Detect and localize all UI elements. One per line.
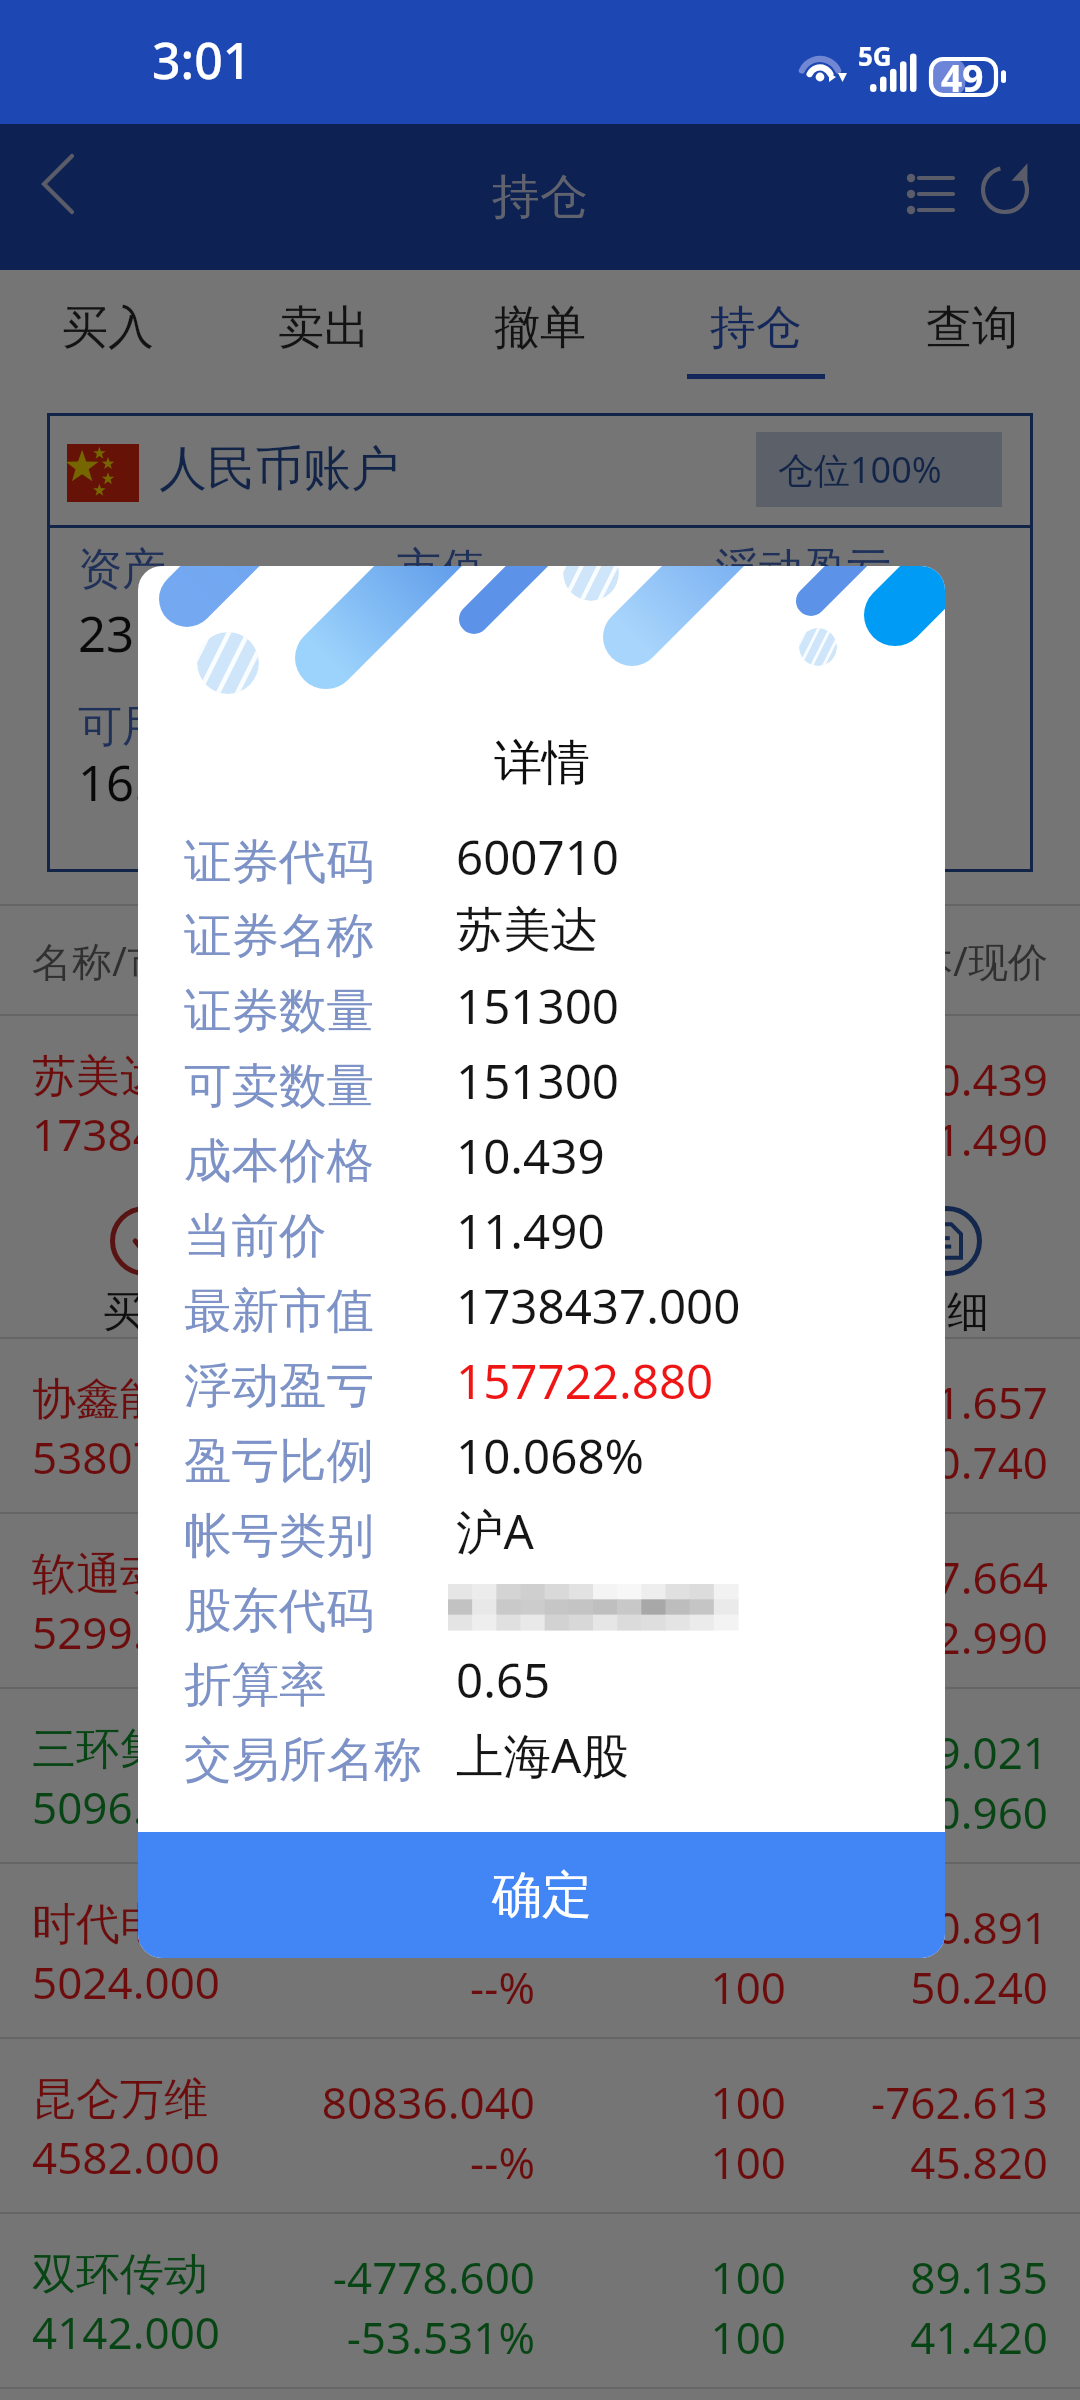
- button[interactable]: 明细: [813, 1206, 1080, 1339]
- staticText: 三环集团: [32, 1722, 317, 1777]
- button[interactable]: 时代电气: [0, 1864, 1080, 2039]
- button[interactable]: 苏美达: [0, 1016, 1080, 1339]
- staticText: 11.490: [456, 1198, 605, 1263]
- button[interactable]: 仓位100%: [756, 432, 1002, 507]
- button[interactable]: 确定: [138, 1832, 945, 1958]
- staticText: 协鑫能科: [32, 1372, 317, 1427]
- staticText: 浮动盈亏: [715, 542, 891, 597]
- staticText: 100: [535, 1432, 786, 1492]
- staticText: 100: [535, 1607, 786, 1667]
- staticText: 5096.000: [32, 1777, 317, 1837]
- button[interactable]: 双环传动: [0, 2214, 1080, 2389]
- button[interactable]: 昆仑万维: [0, 2039, 1080, 2214]
- staticText: 时代电气: [32, 1897, 317, 1952]
- button[interactable]: 撤单: [545, 1206, 813, 1339]
- staticText: 当前价: [184, 1206, 327, 1266]
- staticText: 2317988: [78, 600, 275, 667]
- button[interactable]: 软通动力: [0, 1514, 1080, 1689]
- staticText: 撤单: [637, 1286, 721, 1339]
- button[interactable]: 撤单: [432, 270, 648, 379]
- staticText: 股数/可用: [535, 933, 786, 988]
- staticText: 卖出: [370, 1286, 454, 1339]
- button[interactable]: 买入: [11, 1206, 278, 1339]
- button[interactable]: 卖出: [278, 1206, 545, 1339]
- staticText: 80836.040: [317, 2072, 535, 2132]
- staticText: 50.960: [786, 1782, 1048, 1842]
- staticText: 100: [535, 2247, 786, 2307]
- button[interactable]: Back: [26, 146, 88, 208]
- staticText: 16.000: [78, 749, 232, 816]
- staticText: 4582.000: [32, 2127, 317, 2187]
- staticText: 49: [941, 52, 984, 102]
- button[interactable]: 持仓: [648, 270, 864, 379]
- staticText: -500.000: [317, 1722, 535, 1782]
- staticText: 浮动盈亏: [184, 1356, 374, 1416]
- staticText: 5299.000: [32, 1602, 317, 1662]
- staticText: 5024.000: [32, 1952, 317, 2012]
- staticText: 股东代码: [184, 1581, 374, 1641]
- staticText: --%: [317, 2132, 535, 2192]
- staticText: 100: [535, 2072, 786, 2132]
- staticText: 证券代码: [184, 832, 374, 892]
- staticText: --%: [317, 1782, 535, 1842]
- staticText: 证券数量: [184, 981, 374, 1041]
- staticText: 50.240: [786, 1957, 1048, 2017]
- staticText: 查询: [926, 299, 1018, 357]
- staticText: 3:01: [152, 26, 252, 94]
- staticText: 100: [535, 2132, 786, 2192]
- staticText: 折算率: [184, 1655, 327, 1715]
- staticText: --%: [317, 1607, 535, 1667]
- staticText: 撤单: [494, 299, 586, 357]
- staticText: 52.990: [786, 1607, 1048, 1667]
- button[interactable]: 协鑫能科: [0, 1339, 1080, 1514]
- button[interactable]: Refresh: [973, 158, 1037, 222]
- staticText: 软通动力: [32, 1547, 317, 1602]
- staticText: 538077.000: [32, 1427, 317, 1487]
- staticText: 1738437.000: [32, 1104, 317, 1164]
- button[interactable]: 人民币账户: [47, 413, 1033, 525]
- staticText: 双环传动: [32, 2247, 317, 2302]
- staticText: 10.439: [456, 1123, 605, 1188]
- staticText: 盈亏比例: [184, 1431, 374, 1491]
- staticText: 217988: [715, 600, 884, 667]
- staticText: 151300: [535, 1049, 786, 1109]
- staticText: 苏美达: [32, 1049, 317, 1104]
- staticText: 100: [535, 2307, 786, 2367]
- staticText: 89.135: [786, 2247, 1048, 2307]
- button[interactable]: 买入: [0, 270, 216, 379]
- staticText: 45.820: [786, 2132, 1048, 2192]
- button[interactable]: List view: [896, 163, 968, 231]
- staticText: 帐号类别: [184, 1506, 374, 1566]
- staticText: 持仓: [710, 299, 802, 357]
- button[interactable]: 三环集团: [0, 1689, 1080, 1864]
- staticText: 成本价格: [184, 1131, 374, 1191]
- staticText: 名称/市值: [32, 933, 317, 988]
- staticText: 4142.000: [32, 2302, 317, 2362]
- staticText: -762.613: [786, 2072, 1048, 2132]
- staticText: 买入: [103, 1286, 187, 1339]
- staticText: -4778.600: [317, 2247, 535, 2307]
- staticText: 最新市值: [184, 1281, 374, 1341]
- staticText: 600710: [456, 824, 620, 889]
- staticText: 23.344%: [317, 1492, 535, 1547]
- staticText: 157722.880: [456, 1348, 714, 1413]
- staticText: 资产: [78, 542, 166, 597]
- staticText: 5G: [858, 38, 892, 73]
- staticText: 1738437.000: [456, 1273, 741, 1338]
- staticText: 证券名称: [184, 906, 374, 966]
- staticText: 41.420: [786, 2307, 1048, 2367]
- staticText: 151300: [456, 1048, 620, 1113]
- staticText: 10.068%: [317, 1169, 535, 1229]
- staticText: 沪A: [456, 1498, 534, 1563]
- button[interactable]: 查询: [864, 270, 1080, 379]
- button[interactable]: 卖出: [216, 270, 432, 379]
- staticText: 可卖数量: [184, 1056, 374, 1116]
- staticText: 人民币账户: [159, 439, 399, 499]
- staticText: 持仓: [492, 167, 588, 227]
- staticText: 7.664: [786, 1547, 1048, 1607]
- staticText: 10.068%: [456, 1423, 645, 1488]
- staticText: 盈亏/比例: [317, 933, 535, 988]
- staticText: 详情: [494, 733, 590, 793]
- staticText: 100: [535, 1897, 786, 1957]
- staticText: 0.65: [456, 1647, 551, 1712]
